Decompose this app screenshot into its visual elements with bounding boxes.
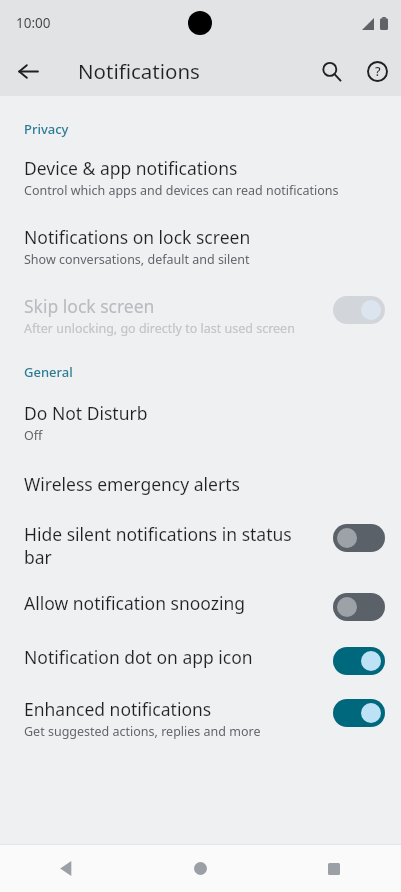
button[interactable]: Recents — [267, 845, 401, 892]
button[interactable]: Toggle — [333, 296, 385, 324]
button[interactable]: Enhanced notifications — [0, 675, 401, 740]
button[interactable]: Device & app notifications — [0, 138, 401, 199]
button[interactable]: Home — [133, 845, 267, 892]
staticText: 10:00 — [16, 14, 51, 32]
button[interactable]: Help — [355, 49, 399, 93]
staticText: After unlocking, go directly to last use… — [24, 320, 295, 337]
button[interactable]: Hide silent notifications in status bar — [0, 496, 401, 569]
button[interactable]: Wireless emergency alerts — [0, 444, 401, 496]
staticText: Notifications on lock screen — [24, 225, 251, 249]
staticText: Notification dot on app icon — [24, 645, 253, 669]
button[interactable]: Notifications on lock screen — [0, 199, 401, 268]
staticText: Control which apps and devices can read … — [24, 182, 339, 199]
staticText: Do Not Disturb — [24, 401, 148, 425]
staticText: Enhanced notifications — [24, 697, 212, 721]
staticText: Allow notification snoozing — [24, 591, 246, 615]
staticText: Off — [24, 427, 43, 444]
button[interactable]: Toggle — [333, 647, 385, 675]
staticText: Device & app notifications — [24, 156, 238, 180]
staticText: Skip lock screen — [24, 294, 155, 318]
button[interactable]: Notification dot on app icon — [0, 621, 401, 675]
staticText: Notifications — [78, 57, 200, 85]
button[interactable]: Back — [6, 49, 50, 93]
staticText: ? — [375, 63, 381, 80]
button[interactable]: Toggle — [333, 699, 385, 727]
button[interactable]: Allow notification snoozing — [0, 569, 401, 621]
staticText: Privacy — [24, 120, 401, 138]
button[interactable]: Skip lock screen — [0, 268, 401, 337]
staticText: Show conversations, default and silent — [24, 251, 250, 268]
staticText: Hide silent notifications in status bar — [24, 522, 323, 569]
staticText: Wireless emergency alerts — [24, 472, 240, 496]
button[interactable]: Back — [0, 845, 133, 892]
staticText: Get suggested actions, replies and more — [24, 723, 261, 740]
button[interactable]: Toggle — [333, 593, 385, 621]
button[interactable]: Search — [309, 49, 353, 93]
button[interactable]: Do Not Disturb — [0, 381, 401, 444]
button[interactable]: Toggle — [333, 524, 385, 552]
staticText: General — [24, 363, 401, 381]
